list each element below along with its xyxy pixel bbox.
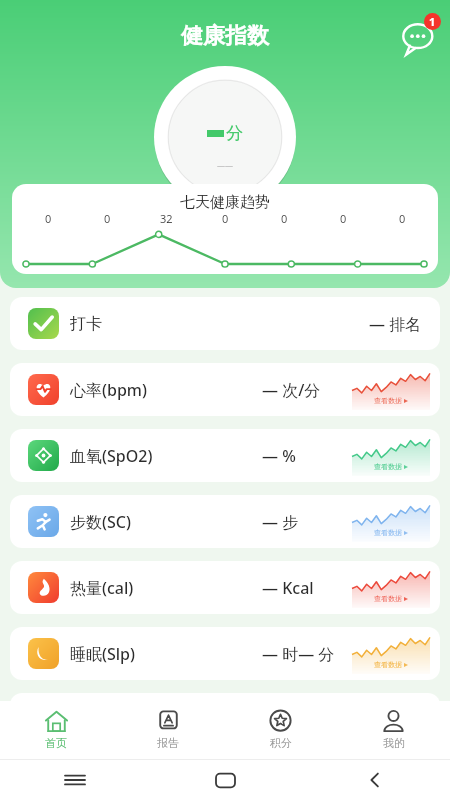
staticText: 我的 (383, 736, 405, 750)
staticText: 0 (340, 211, 347, 226)
button[interactable]: Back (366, 771, 384, 789)
staticText: 1 (429, 14, 436, 29)
button[interactable]: 查看数据 (352, 568, 430, 608)
staticText: 查看数据 (374, 396, 402, 405)
staticText: 0 (399, 211, 406, 226)
staticText: 查看数据 (374, 528, 402, 537)
staticText: — 时— 分 (262, 643, 335, 665)
staticText: 心率(bpm) (70, 379, 147, 401)
button[interactable]: 心率(bpm) (10, 363, 440, 416)
staticText: 查看数据 (374, 594, 402, 603)
button[interactable]: 步数(SC) (10, 495, 440, 548)
button[interactable]: 热量(cal) (10, 561, 440, 614)
staticText: 0 (222, 211, 229, 226)
button[interactable]: 查看数据 (352, 634, 430, 674)
staticText: 热量(cal) (70, 577, 134, 599)
staticText: 健康指数 (181, 22, 269, 50)
staticText: 查看数据 (374, 462, 402, 471)
button[interactable]: 查看数据 (352, 502, 430, 542)
staticText: —— (217, 160, 233, 171)
staticText: 积分 (270, 736, 292, 750)
staticText: 血氧(SpO2) (70, 445, 153, 467)
staticText: — 排名 (369, 313, 422, 335)
staticText: 0 (104, 211, 111, 226)
button[interactable]: Home (216, 771, 235, 790)
staticText: 32 (160, 211, 173, 226)
staticText: 0 (281, 211, 288, 226)
button[interactable]: Messages (398, 12, 442, 56)
staticText: 步数(SC) (70, 511, 131, 533)
staticText: 0 (45, 211, 52, 226)
staticText: 七天健康趋势 (180, 193, 270, 212)
button[interactable]: 睡眠(Slp) (10, 627, 440, 680)
staticText: 查看数据 (374, 660, 402, 669)
staticText: 分 (226, 123, 243, 144)
button[interactable]: 积分 (224, 701, 337, 759)
button[interactable]: Recents (65, 770, 85, 790)
staticText: 睡眠(Slp) (70, 643, 136, 665)
button[interactable]: 血氧(SpO2) (10, 429, 440, 482)
staticText: — % (262, 445, 296, 467)
button[interactable]: 首页 (0, 701, 112, 759)
staticText: 报告 (157, 736, 179, 750)
staticText: — 步 (262, 511, 299, 533)
staticText: — 次/分 (262, 379, 321, 401)
staticText: 首页 (45, 736, 67, 750)
button[interactable]: 七天健康趋势 (12, 184, 438, 274)
staticText: 打卡 (70, 314, 102, 334)
button[interactable]: 查看数据 (352, 370, 430, 410)
staticText: — Kcal (262, 577, 314, 599)
button[interactable]: 打卡 (10, 297, 440, 350)
button[interactable]: 报告 (112, 701, 224, 759)
button[interactable]: 查看数据 (352, 436, 430, 476)
button[interactable]: 我的 (337, 701, 450, 759)
